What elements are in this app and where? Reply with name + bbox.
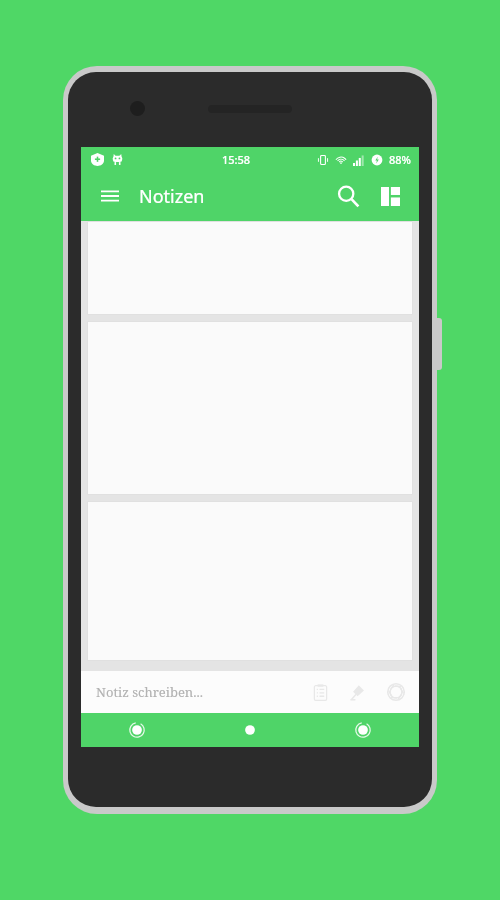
staticText: 88% (389, 152, 411, 167)
button[interactable]: Camera (383, 679, 409, 705)
button[interactable]: Back (81, 713, 193, 747)
button[interactable]: Home (193, 713, 306, 747)
button[interactable]: Menu (91, 177, 129, 215)
staticText: 15:58 (222, 152, 251, 167)
button[interactable]: Search (327, 175, 369, 217)
staticText: Notizen (139, 184, 205, 209)
button[interactable]: Recents (306, 713, 419, 747)
button[interactable]: Notiz schreiben... (81, 671, 419, 713)
button[interactable]: Voice note (345, 679, 371, 705)
button[interactable]: Change layout (369, 175, 411, 217)
staticText: Notiz schreiben... (96, 683, 204, 701)
button[interactable]: Checklist (307, 679, 333, 705)
